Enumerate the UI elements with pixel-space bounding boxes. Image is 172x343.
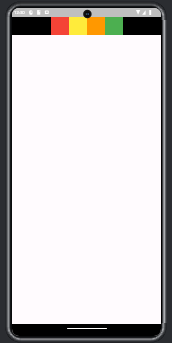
button[interactable]: Yellow swatch [69,17,87,35]
button[interactable]: Orange swatch [87,17,105,35]
staticText: 12:30 [14,10,25,16]
button[interactable]: Home [67,328,107,329]
